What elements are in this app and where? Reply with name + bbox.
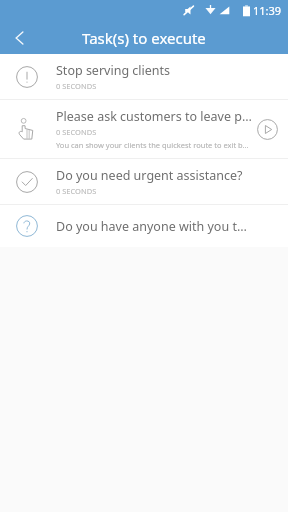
- button[interactable]: Back: [4, 22, 36, 54]
- staticText: Stop serving clients: [56, 62, 171, 79]
- button[interactable]: Play: [252, 114, 282, 144]
- staticText: Please ask customers to leave premises a…: [56, 108, 252, 125]
- button[interactable]: Do you need urgent assistance?: [0, 159, 288, 204]
- staticText: 0 SECONDS: [56, 186, 97, 196]
- staticText: 11:39: [253, 3, 282, 18]
- staticText: 0 SECONDS: [56, 127, 97, 137]
- staticText: Do you have anyone with you that would r…: [56, 218, 252, 235]
- staticText: You can show your clients the quickest r…: [56, 140, 252, 150]
- button[interactable]: Please ask customers to leave premises a…: [0, 100, 288, 158]
- staticText: Task(s) to execute: [82, 28, 206, 48]
- button[interactable]: Do you have anyone with you that would r…: [0, 205, 288, 247]
- button[interactable]: Stop serving clients: [0, 54, 288, 99]
- staticText: 0 SECONDS: [56, 81, 97, 91]
- staticText: Do you need urgent assistance?: [56, 167, 243, 184]
